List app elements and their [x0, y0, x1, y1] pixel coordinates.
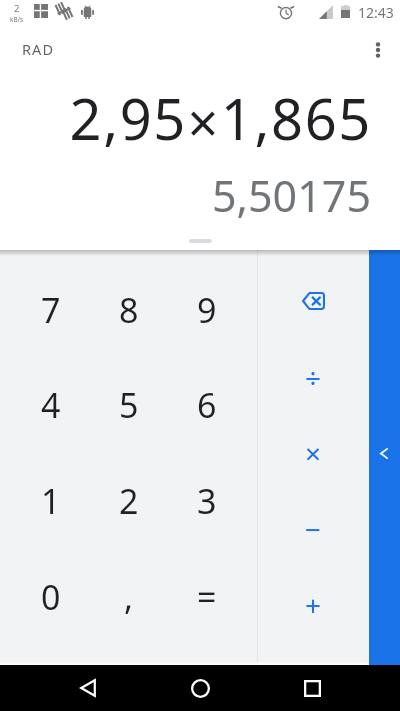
button[interactable]: More options [352, 26, 400, 72]
button[interactable]: Home [144, 665, 256, 711]
staticText: 3 [197, 478, 217, 524]
staticText: RAD [22, 39, 55, 59]
staticText: kB/s [10, 15, 24, 24]
staticText: 2 [14, 2, 20, 15]
button[interactable]: 7 [12, 262, 90, 357]
button[interactable]: 8 [90, 262, 168, 357]
staticText: × [187, 85, 220, 159]
staticText: 7 [41, 287, 61, 333]
button[interactable]: 3 [168, 453, 246, 549]
staticText: − [305, 510, 322, 548]
button[interactable]: Delete [258, 262, 369, 339]
staticText: 5,50175 [211, 166, 371, 225]
staticText: + [305, 586, 322, 624]
button[interactable]: = [168, 549, 246, 645]
button[interactable]: 5 [90, 357, 168, 453]
staticText: 8 [119, 287, 139, 333]
staticText: × [305, 434, 322, 472]
button[interactable]: 1 [12, 453, 90, 549]
staticText: 6 [197, 382, 217, 428]
staticText: 0 [41, 574, 61, 620]
staticText: 9 [197, 287, 217, 333]
button[interactable]: 6 [168, 357, 246, 453]
staticText: = [197, 574, 217, 620]
button[interactable]: , [90, 549, 168, 645]
button[interactable]: Recent apps [256, 665, 368, 711]
button[interactable]: Plus [258, 567, 369, 643]
staticText: 2,95 [69, 80, 187, 156]
button[interactable]: 0 [12, 549, 90, 645]
staticText: 1,865 [220, 80, 372, 156]
button[interactable]: 4 [12, 357, 90, 453]
staticText: , [124, 574, 134, 620]
button[interactable]: Divide [258, 339, 369, 415]
staticText: ÷ [305, 358, 322, 396]
button[interactable]: Show more functions [369, 250, 400, 665]
button[interactable]: 9 [168, 262, 246, 357]
button[interactable]: 2 [90, 453, 168, 549]
staticText: 1 [41, 478, 61, 524]
button[interactable]: Minus [258, 491, 369, 567]
staticText: 4 [41, 382, 61, 428]
button[interactable]: RAD [10, 31, 67, 67]
staticText: 5 [119, 382, 139, 428]
staticText: 2 [119, 478, 139, 524]
button[interactable]: Multiply [258, 415, 369, 491]
button[interactable]: Back [32, 665, 144, 711]
staticText: 12:43 [358, 3, 394, 22]
